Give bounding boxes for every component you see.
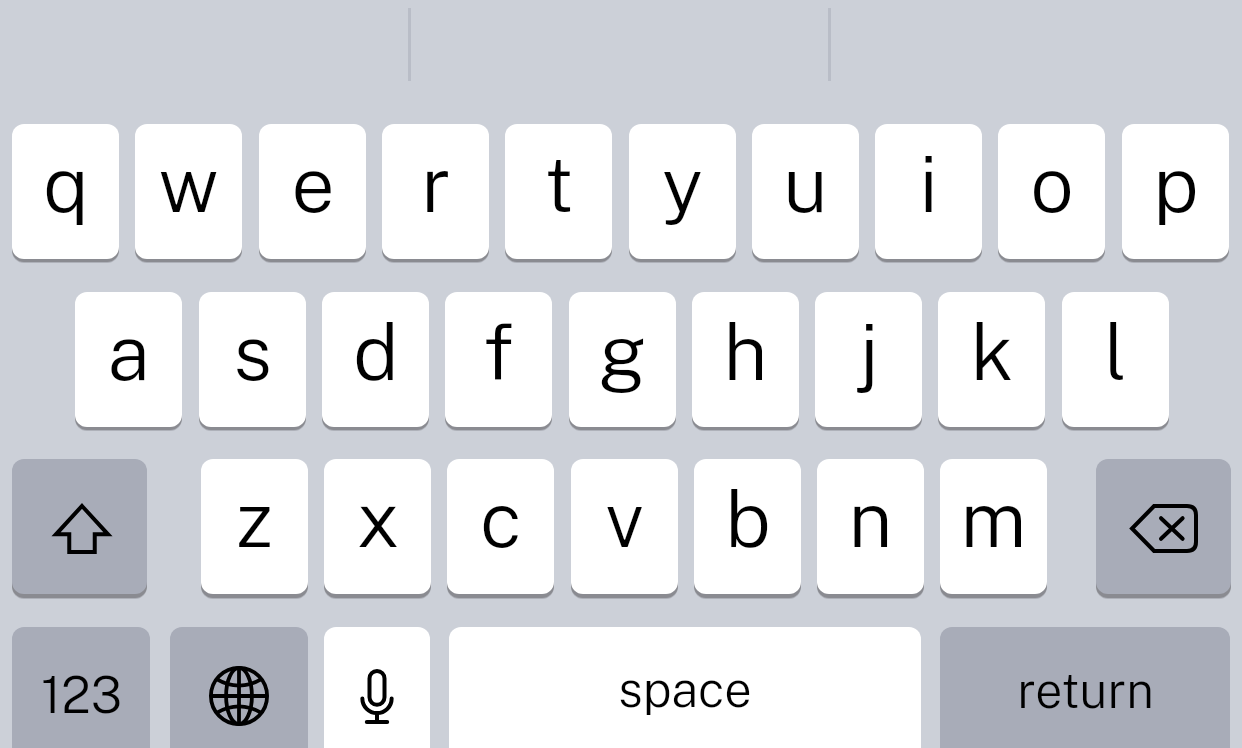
button[interactable]: p bbox=[1122, 124, 1229, 259]
staticText: y bbox=[662, 138, 703, 229]
staticText: m bbox=[960, 473, 1027, 564]
button[interactable]: t bbox=[505, 124, 612, 259]
button[interactable]: m bbox=[940, 459, 1047, 594]
button[interactable]: g bbox=[569, 292, 676, 427]
button[interactable]: q bbox=[12, 124, 119, 259]
button[interactable]: space bbox=[449, 627, 921, 748]
staticText: w bbox=[158, 138, 219, 229]
button[interactable]: h bbox=[692, 292, 799, 427]
button[interactable]: s bbox=[199, 292, 306, 427]
button[interactable]: d bbox=[322, 292, 429, 427]
staticText: f bbox=[483, 306, 514, 397]
staticText: r bbox=[421, 138, 451, 229]
button[interactable]: f bbox=[445, 292, 552, 427]
staticText: a bbox=[107, 306, 150, 397]
staticText: h bbox=[723, 306, 768, 397]
staticText: x bbox=[356, 473, 400, 564]
staticText: c bbox=[480, 473, 522, 564]
staticText: 123 bbox=[41, 665, 122, 724]
staticText: b bbox=[725, 473, 771, 564]
staticText: i bbox=[919, 138, 938, 229]
button[interactable]: i bbox=[875, 124, 982, 259]
staticText: g bbox=[598, 306, 647, 397]
button[interactable]: o bbox=[998, 124, 1105, 259]
staticText: v bbox=[605, 473, 644, 564]
staticText: l bbox=[1104, 306, 1127, 397]
button[interactable]: e bbox=[259, 124, 366, 259]
staticText: e bbox=[291, 138, 335, 229]
button[interactable]: Shift bbox=[12, 459, 147, 594]
button[interactable]: x bbox=[324, 459, 431, 594]
staticText: d bbox=[353, 306, 399, 397]
button[interactable]: z bbox=[201, 459, 308, 594]
staticText: q bbox=[43, 138, 89, 229]
button[interactable]: Backspace bbox=[1096, 459, 1231, 594]
button[interactable]: n bbox=[817, 459, 924, 594]
staticText: p bbox=[1153, 138, 1199, 229]
button[interactable]: a bbox=[75, 292, 182, 427]
button[interactable]: l bbox=[1062, 292, 1169, 427]
staticText: o bbox=[1030, 138, 1074, 229]
button[interactable]: r bbox=[382, 124, 489, 259]
button[interactable]: v bbox=[571, 459, 678, 594]
button[interactable]: Dictate bbox=[324, 627, 430, 748]
staticText: space bbox=[618, 661, 752, 718]
staticText: n bbox=[848, 473, 893, 564]
staticText: s bbox=[233, 306, 272, 397]
button[interactable]: b bbox=[694, 459, 801, 594]
staticText: u bbox=[783, 138, 828, 229]
staticText: j bbox=[859, 306, 879, 397]
button[interactable]: u bbox=[752, 124, 859, 259]
staticText: k bbox=[970, 306, 1014, 397]
button[interactable]: k bbox=[938, 292, 1045, 427]
button[interactable]: Next keyboard bbox=[170, 627, 308, 748]
staticText: return bbox=[1017, 662, 1154, 719]
staticText: t bbox=[544, 138, 574, 229]
button[interactable]: return bbox=[940, 627, 1230, 748]
button[interactable]: y bbox=[629, 124, 736, 259]
staticText: z bbox=[236, 473, 273, 564]
button[interactable]: j bbox=[815, 292, 922, 427]
button[interactable]: w bbox=[135, 124, 242, 259]
button[interactable]: 123 bbox=[12, 627, 150, 748]
button[interactable]: c bbox=[447, 459, 554, 594]
